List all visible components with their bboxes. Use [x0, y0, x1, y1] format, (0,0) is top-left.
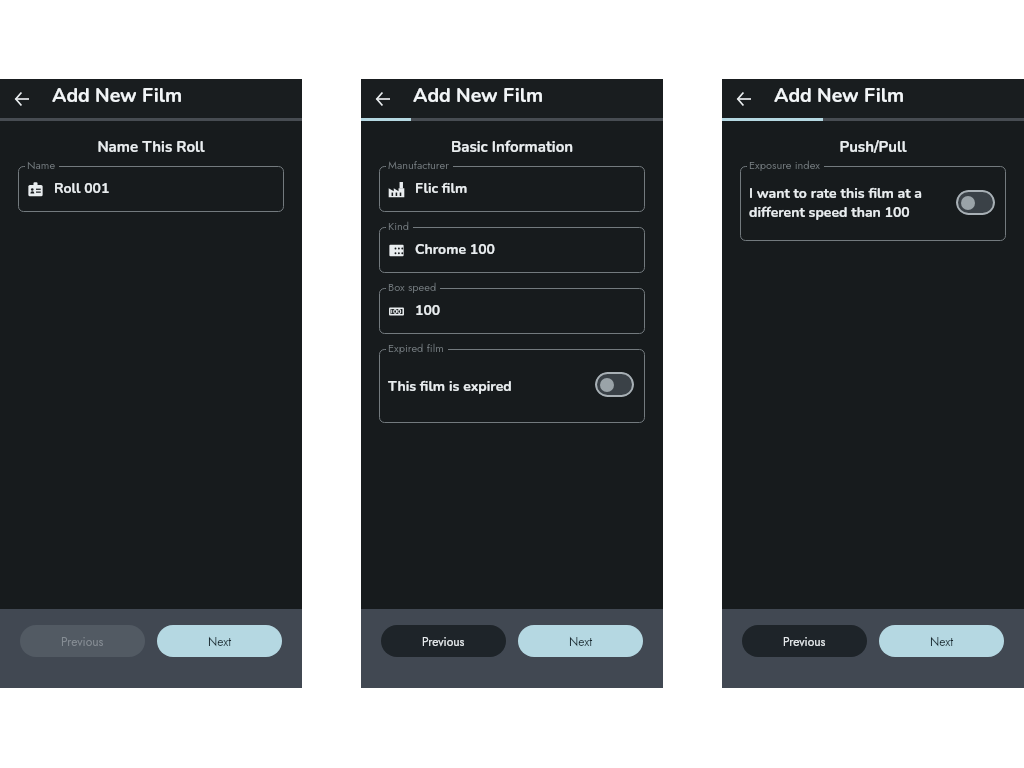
button[interactable]: Next [518, 625, 643, 657]
staticText: Push/Pull [740, 137, 1006, 157]
staticText: 100 [415, 301, 441, 320]
staticText: Add New Film [413, 82, 544, 109]
staticText: Flic film [415, 179, 468, 198]
button[interactable]: Toggle [595, 372, 634, 397]
staticText: Manufacturer [388, 157, 449, 173]
staticText: Add New Film [52, 82, 183, 109]
staticText: Next [930, 633, 954, 650]
staticText: Basic Information [379, 137, 645, 157]
staticText: I want to rate this film at a different … [749, 184, 944, 222]
button[interactable]: Previous [381, 625, 506, 657]
staticText: Name [27, 157, 56, 173]
button[interactable]: Back [9, 79, 35, 118]
button[interactable]: Next [879, 625, 1004, 657]
staticText: Expired film [388, 340, 444, 356]
staticText: Previous [422, 633, 465, 650]
button[interactable]: Previous [20, 625, 145, 657]
button[interactable]: Next [157, 625, 282, 657]
staticText: Chrome 100 [415, 240, 496, 259]
staticText: Previous [61, 633, 104, 650]
button[interactable]: Toggle [956, 190, 995, 215]
staticText: Exposure index [749, 157, 820, 173]
button[interactable]: Back [370, 79, 396, 118]
staticText: Next [569, 633, 593, 650]
staticText: Add New Film [774, 82, 905, 109]
staticText: Box speed [388, 279, 437, 295]
staticText: Previous [783, 633, 826, 650]
button[interactable]: Back [731, 79, 757, 118]
staticText: This film is expired [388, 377, 595, 396]
staticText: Roll 001 [54, 179, 110, 198]
staticText: Kind [388, 218, 410, 234]
button[interactable]: Previous [742, 625, 867, 657]
staticText: Next [208, 633, 232, 650]
staticText: Name This Roll [18, 137, 284, 157]
